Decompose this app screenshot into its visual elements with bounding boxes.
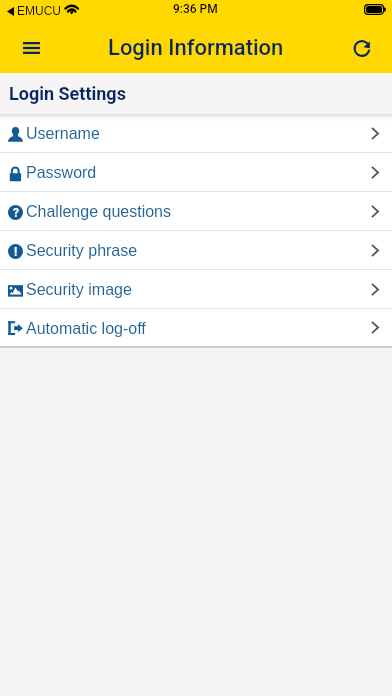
button[interactable]: Refresh [340,26,384,70]
staticText: Security phrase [26,242,138,260]
staticText: Security image [26,281,132,299]
staticText: Automatic log-off [26,320,146,338]
button[interactable]: Automatic log-off [0,309,392,348]
staticText: EMUCU [17,4,61,17]
button[interactable]: Security image [0,270,392,309]
button[interactable]: Password [0,153,392,192]
button[interactable]: Menu [9,26,53,70]
staticText: 9:36 PM [173,2,218,16]
staticText: Login Settings [9,83,126,104]
staticText: ! [14,245,18,259]
staticText: Password [26,164,97,182]
staticText: Login Information [108,35,284,61]
button[interactable]: ? [0,192,392,231]
staticText: Username [26,125,100,143]
staticText: ? [13,206,19,220]
button[interactable]: ! [0,231,392,270]
staticText: Challenge questions [26,203,171,221]
button[interactable]: Username [0,114,392,153]
